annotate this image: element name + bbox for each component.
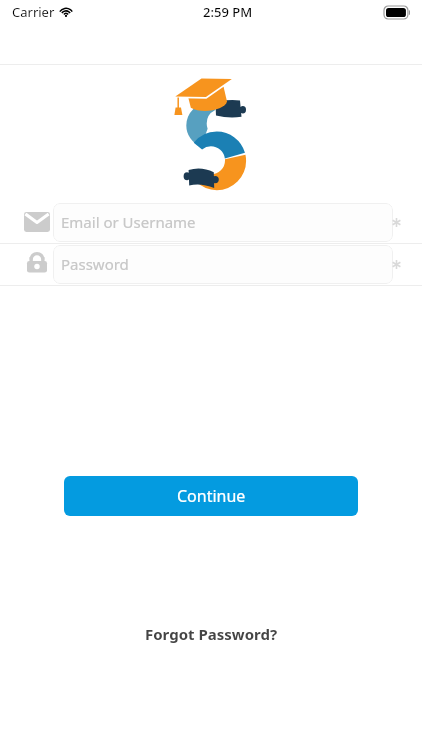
other: Email [24,212,50,232]
button[interactable]: Forgot Password? [133,618,290,650]
staticText: Continue [177,485,246,507]
button[interactable]: Password [53,245,393,284]
staticText: Password [61,254,129,274]
staticText: 2:59 PM [203,3,253,21]
button[interactable]: Email or Username [53,203,393,242]
other: Password [24,253,50,273]
staticText: Carrier [12,3,55,21]
staticText: Email or Username [61,212,196,232]
staticText: Forgot Password? [145,624,278,644]
button[interactable]: Continue [64,476,358,516]
